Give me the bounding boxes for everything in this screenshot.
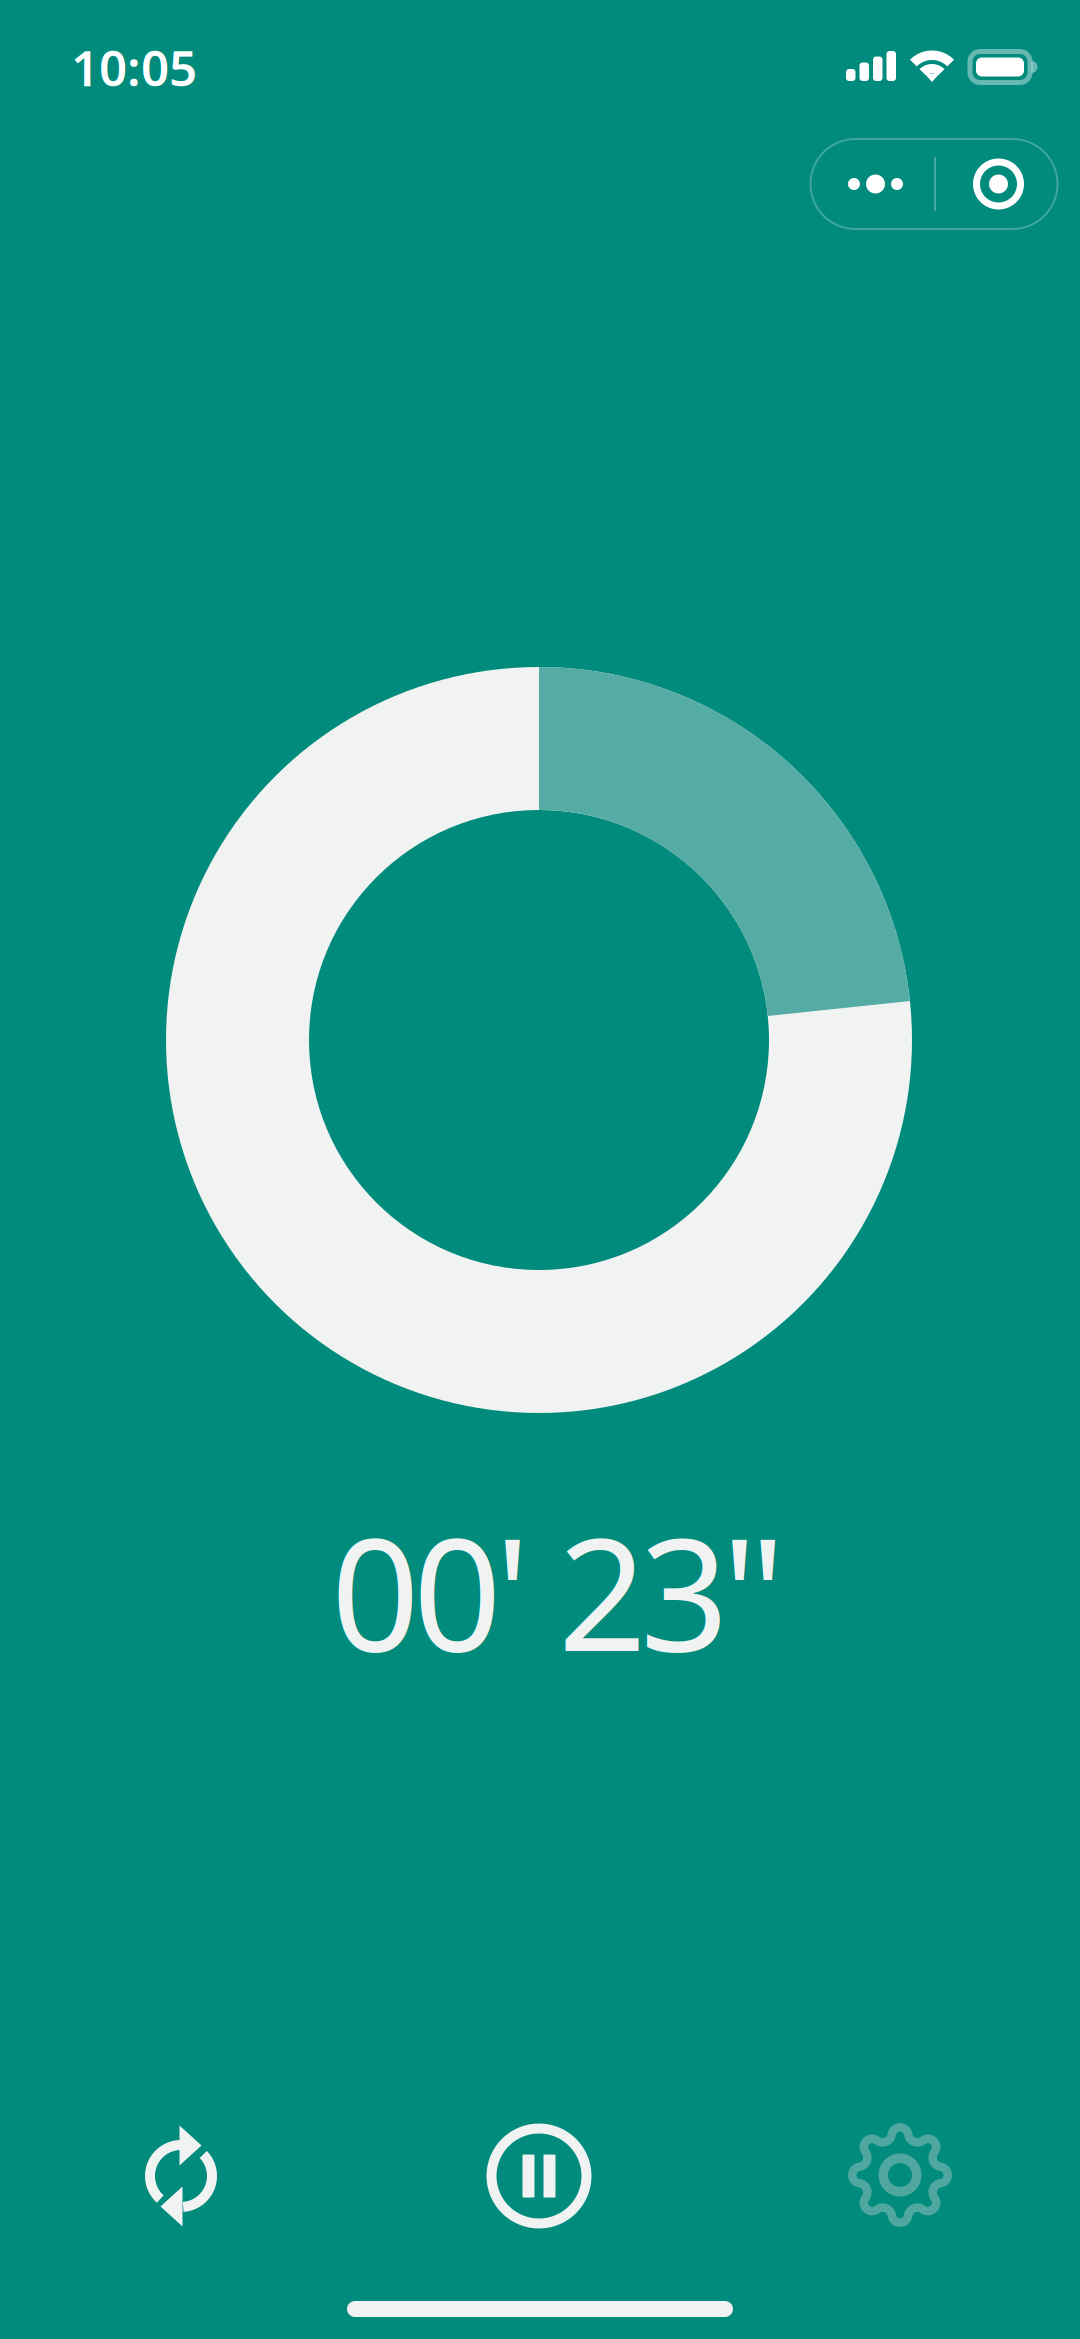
button[interactable]: More options	[810, 139, 1057, 229]
button[interactable]: Restart	[86, 2096, 276, 2256]
button[interactable]: Pause	[444, 2096, 634, 2256]
staticText: 00' 23"	[331, 1488, 785, 1694]
button[interactable]: Settings	[805, 2095, 995, 2255]
staticText: 10:05	[71, 34, 197, 100]
